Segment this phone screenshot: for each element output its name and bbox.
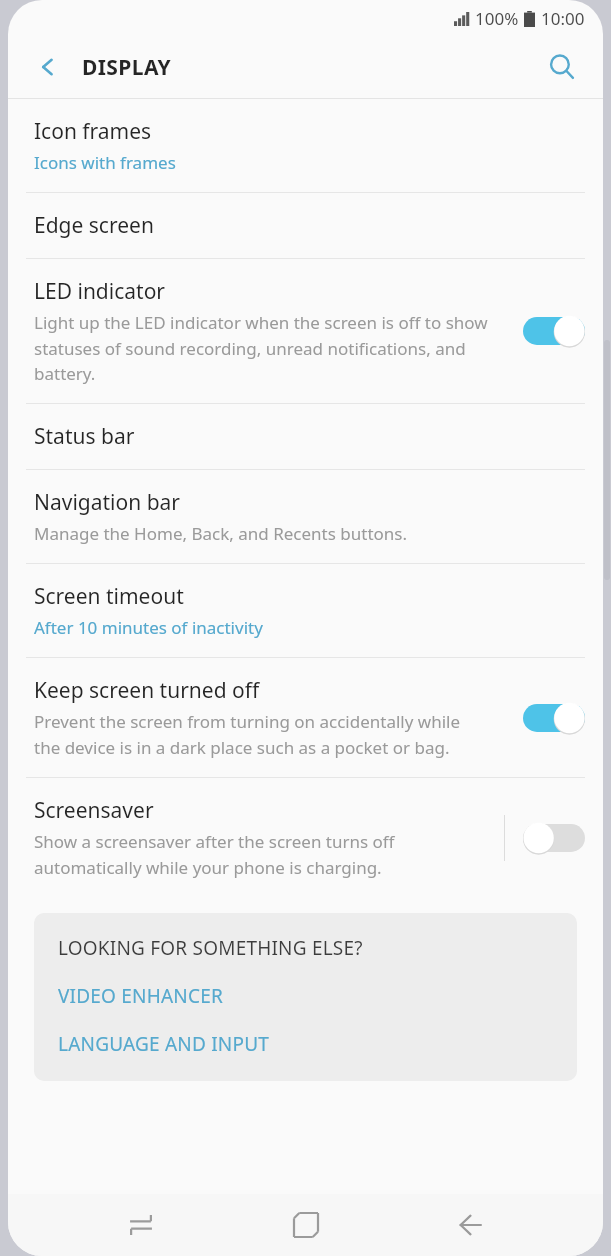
staticText: Screensaver xyxy=(34,796,154,825)
button[interactable]: Screensaver xyxy=(8,778,603,897)
staticText: Status bar xyxy=(34,422,135,451)
button[interactable]: On xyxy=(523,701,585,735)
button[interactable]: Status bar xyxy=(8,404,603,469)
button[interactable]: Back xyxy=(26,45,70,89)
button[interactable]: Recents xyxy=(110,1194,172,1256)
staticText: 100% xyxy=(475,7,519,30)
button[interactable]: LANGUAGE AND INPUT xyxy=(58,1031,269,1057)
button[interactable]: VIDEO ENHANCER xyxy=(58,983,223,1009)
staticText: 10:00 xyxy=(541,7,585,30)
staticText: Icon frames xyxy=(34,117,152,146)
staticText: LOOKING FOR SOMETHING ELSE? xyxy=(58,935,363,961)
staticText: DISPLAY xyxy=(82,53,172,82)
staticText: Navigation bar xyxy=(34,488,181,517)
button[interactable]: Off xyxy=(523,821,585,855)
staticText: Keep screen turned off xyxy=(34,676,260,705)
button[interactable]: On xyxy=(523,314,585,348)
staticText: Screen timeout xyxy=(34,582,184,611)
staticText: Edge screen xyxy=(34,211,154,240)
button[interactable]: Screen timeout xyxy=(8,564,603,657)
staticText: Icons with frames xyxy=(34,151,176,174)
button[interactable]: LED indicator xyxy=(8,259,603,403)
button[interactable]: Search xyxy=(539,44,585,90)
staticText: LED indicator xyxy=(34,277,166,306)
staticText: After 10 minutes of inactivity xyxy=(34,616,263,639)
button[interactable]: Icon frames xyxy=(8,99,603,192)
staticText: Manage the Home, Back, and Recents butto… xyxy=(34,522,408,545)
button[interactable]: Home xyxy=(275,1194,337,1256)
staticText: Show a screensaver after the screen turn… xyxy=(34,830,489,879)
button[interactable]: Keep screen turned off xyxy=(8,658,603,777)
button[interactable]: Navigation bar xyxy=(8,470,603,563)
button[interactable]: Edge screen xyxy=(8,193,603,258)
staticText: Prevent the screen from turning on accid… xyxy=(34,710,489,759)
button[interactable]: Back xyxy=(439,1194,501,1256)
staticText: Light up the LED indicator when the scre… xyxy=(34,311,489,385)
